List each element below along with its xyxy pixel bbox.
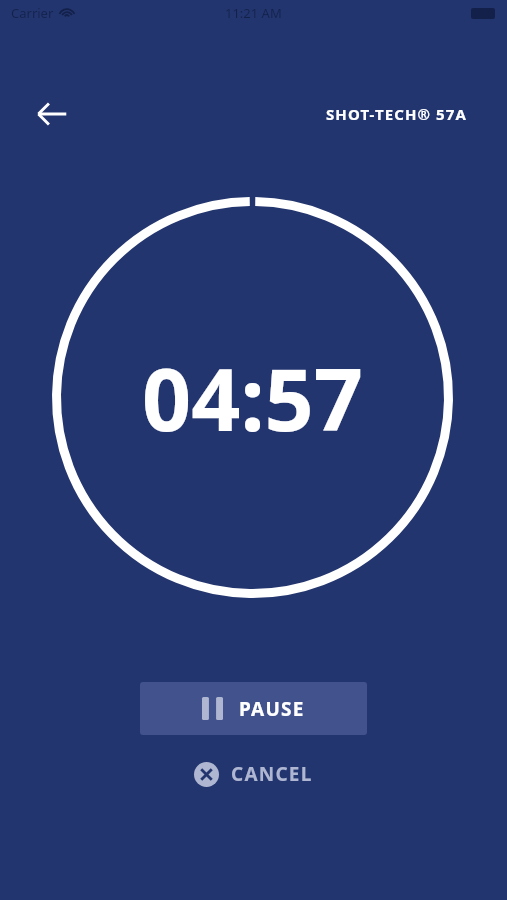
button[interactable]: SHOT-TECH® 57A (326, 104, 467, 124)
staticText: SHOT-TECH® 57A (326, 104, 467, 124)
button[interactable]: CANCEL (188, 757, 319, 791)
staticText: 04:57 (142, 339, 363, 456)
staticText: PAUSE (239, 696, 305, 722)
staticText: CANCEL (231, 761, 313, 787)
button[interactable]: Back (26, 88, 78, 140)
button[interactable]: PAUSE (140, 682, 367, 735)
staticText: Carrier (11, 4, 54, 22)
staticText: 11:21 AM (225, 4, 282, 22)
